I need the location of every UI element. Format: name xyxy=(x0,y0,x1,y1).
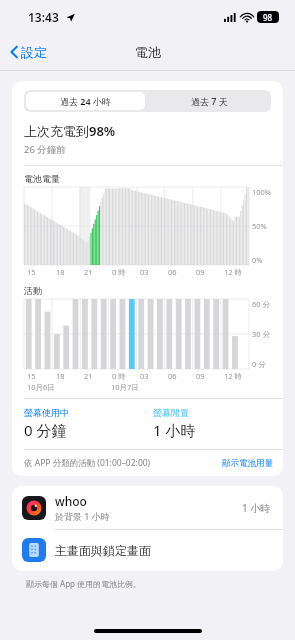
staticText: 03 xyxy=(140,267,149,277)
staticText: 12 時 xyxy=(224,371,243,381)
staticText: 21 xyxy=(84,371,93,381)
staticText: 50% xyxy=(252,221,267,231)
button[interactable]: whoo app icon xyxy=(12,486,283,529)
staticText: 10月7日 xyxy=(111,382,139,392)
staticText: 過去 7 天 xyxy=(191,95,228,107)
button[interactable]: 顯示電池用量 xyxy=(222,458,273,469)
staticText: 21 xyxy=(84,267,93,277)
staticText: 10月6日 xyxy=(27,382,55,392)
staticText: 0 時 xyxy=(112,371,126,381)
staticText: 06 xyxy=(168,267,177,277)
staticText: whoo xyxy=(55,493,87,509)
staticText: 螢幕使用中 xyxy=(24,407,69,418)
staticText: 1 小時 xyxy=(242,501,271,515)
staticText: 活動 xyxy=(24,285,42,296)
staticText: 0 時 xyxy=(112,267,126,277)
other: whoo app icon xyxy=(22,496,46,520)
staticText: 09 xyxy=(196,371,205,381)
other: Home Screen and Lock Screen xyxy=(22,538,46,562)
staticText: 依 APP 分類的活動 (01:00–02:00) xyxy=(24,457,151,469)
button[interactable]: 過去 24 小時 xyxy=(26,92,145,110)
staticText: 26 分鐘前 xyxy=(24,143,66,156)
staticText: 03 xyxy=(140,371,149,381)
staticText: 18 xyxy=(56,371,65,381)
staticText: 60 分 xyxy=(252,299,271,309)
staticText: 螢幕閒置 xyxy=(153,407,189,418)
staticText: 06 xyxy=(168,371,177,381)
staticText: 過去 24 小時 xyxy=(60,95,111,107)
staticText: 100% xyxy=(252,187,272,197)
staticText: 13:43 xyxy=(28,9,59,25)
staticText: 設定 xyxy=(21,44,47,60)
staticText: 09 xyxy=(196,267,205,277)
staticText: 15 xyxy=(27,267,36,277)
staticText: 18 xyxy=(56,267,65,277)
staticText: 0 分 xyxy=(252,359,266,369)
staticText: 上次充電到98% xyxy=(24,122,116,140)
staticText: 0 分鐘 xyxy=(24,420,67,440)
staticText: 98 xyxy=(263,12,273,23)
staticText: 主畫面與鎖定畫面 xyxy=(55,543,151,558)
button[interactable]: 設定 xyxy=(6,41,51,63)
button[interactable]: 過去 7 天 xyxy=(147,90,271,112)
button[interactable]: Home Screen and Lock Screen xyxy=(12,530,283,571)
staticText: 電池電量 xyxy=(24,173,60,184)
staticText: 0% xyxy=(252,255,263,265)
staticText: 1 小時 xyxy=(153,420,196,440)
staticText: 電池 xyxy=(135,44,161,60)
staticText: 30 分 xyxy=(252,329,271,339)
staticText: 15 xyxy=(27,371,36,381)
staticText: 顯示電池用量 xyxy=(222,458,273,469)
staticText: 顯示每個 App 使用的電池比例。 xyxy=(26,578,142,589)
staticText: 於背景 1 小時 xyxy=(55,510,110,522)
staticText: 12 時 xyxy=(224,267,243,277)
